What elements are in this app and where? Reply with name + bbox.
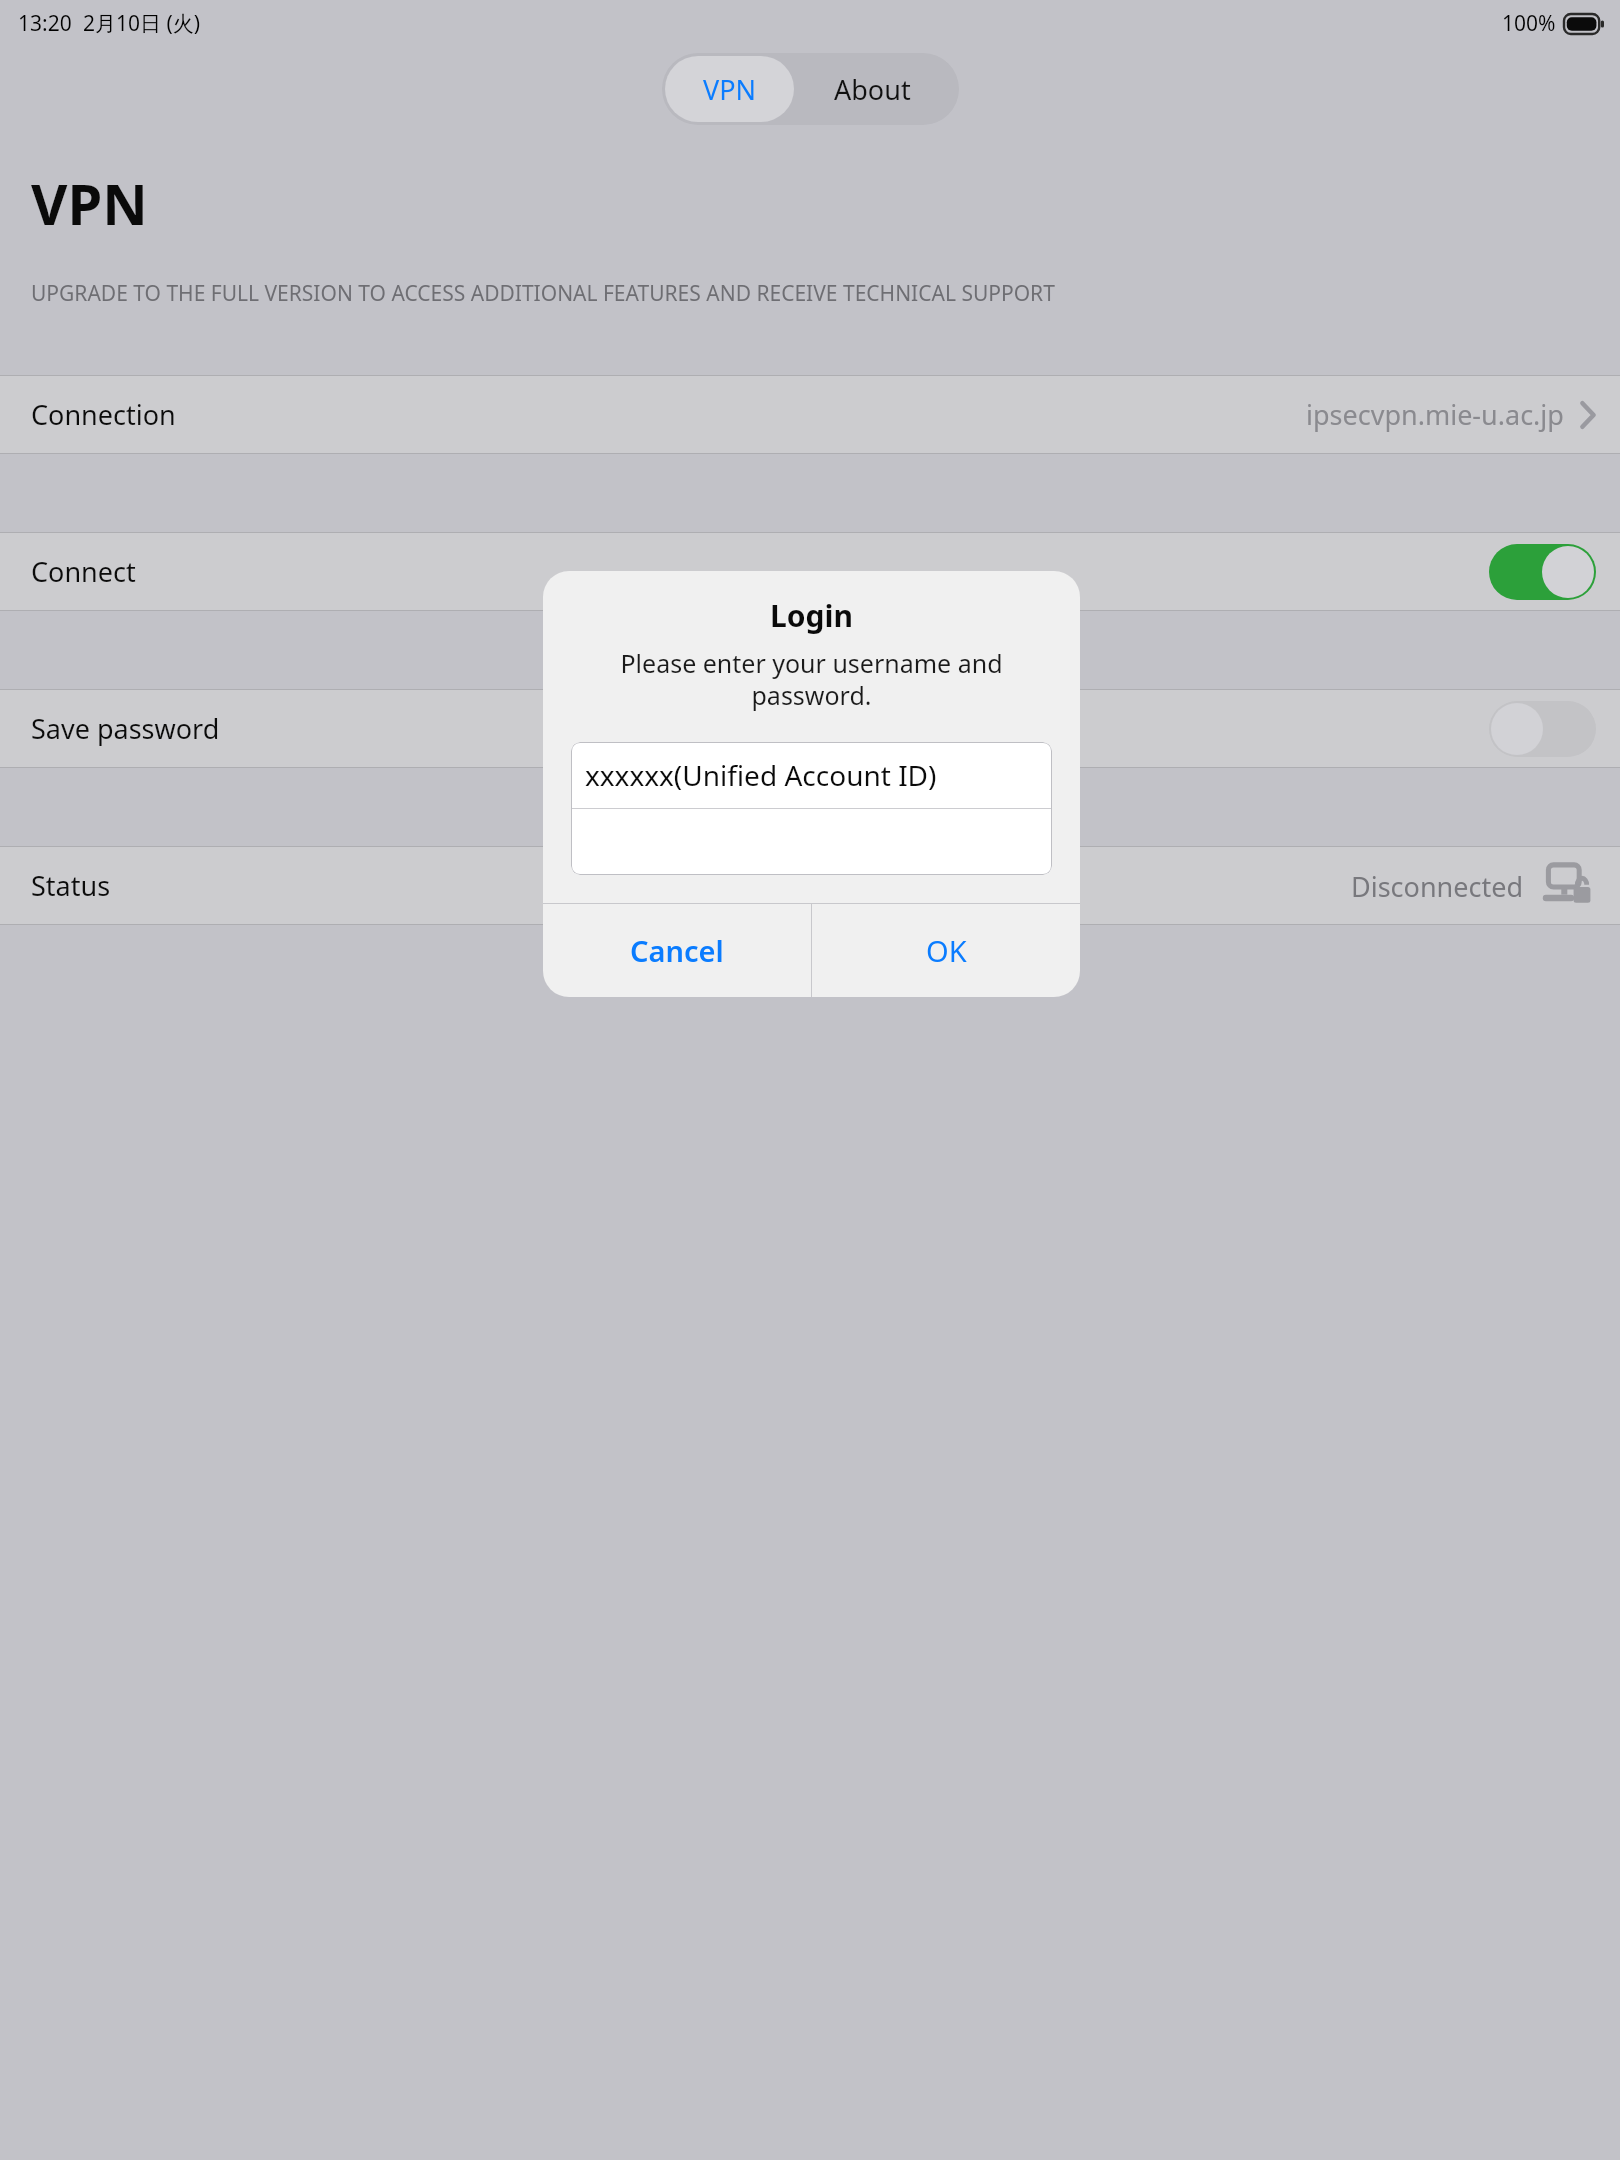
button[interactable]: Toggle on — [1489, 544, 1596, 600]
button[interactable]: Connection — [0, 376, 1620, 453]
button[interactable]: About — [791, 56, 953, 122]
button[interactable]: Cancel — [543, 904, 811, 997]
staticText: xxxxxx(Unified Account ID) — [585, 756, 937, 794]
staticText: Connect — [31, 553, 136, 590]
button[interactable]: Toggle off — [1489, 701, 1596, 757]
staticText: Status — [31, 867, 111, 904]
staticText: 2月10日 (火) — [83, 9, 201, 38]
staticText: Save password — [31, 710, 220, 747]
staticText: ipsecvpn.mie-u.ac.jp — [1306, 396, 1564, 433]
staticText: Please enter your username and password. — [583, 646, 1040, 712]
staticText: Login — [543, 595, 1080, 636]
button[interactable]: xxxxxx(Unified Account ID) — [571, 742, 1052, 808]
button[interactable]: Status — [0, 847, 1620, 924]
staticText: Cancel — [630, 931, 724, 970]
button[interactable]: Connect — [0, 533, 1620, 610]
staticText: Connection — [31, 396, 176, 433]
staticText: UPGRADE TO THE FULL VERSION TO ACCESS AD… — [31, 279, 1055, 308]
staticText: About — [834, 71, 911, 108]
button[interactable] — [571, 809, 1052, 875]
staticText: 13:20 — [18, 9, 72, 38]
button[interactable]: Save password — [0, 690, 1620, 767]
staticText: VPN — [703, 71, 757, 108]
button[interactable]: VPN — [665, 56, 794, 122]
staticText: VPN — [31, 165, 148, 241]
staticText: OK — [926, 931, 967, 970]
button[interactable]: OK — [812, 904, 1080, 997]
staticText: 100% — [1502, 9, 1556, 38]
staticText: Disconnected — [1351, 868, 1524, 905]
